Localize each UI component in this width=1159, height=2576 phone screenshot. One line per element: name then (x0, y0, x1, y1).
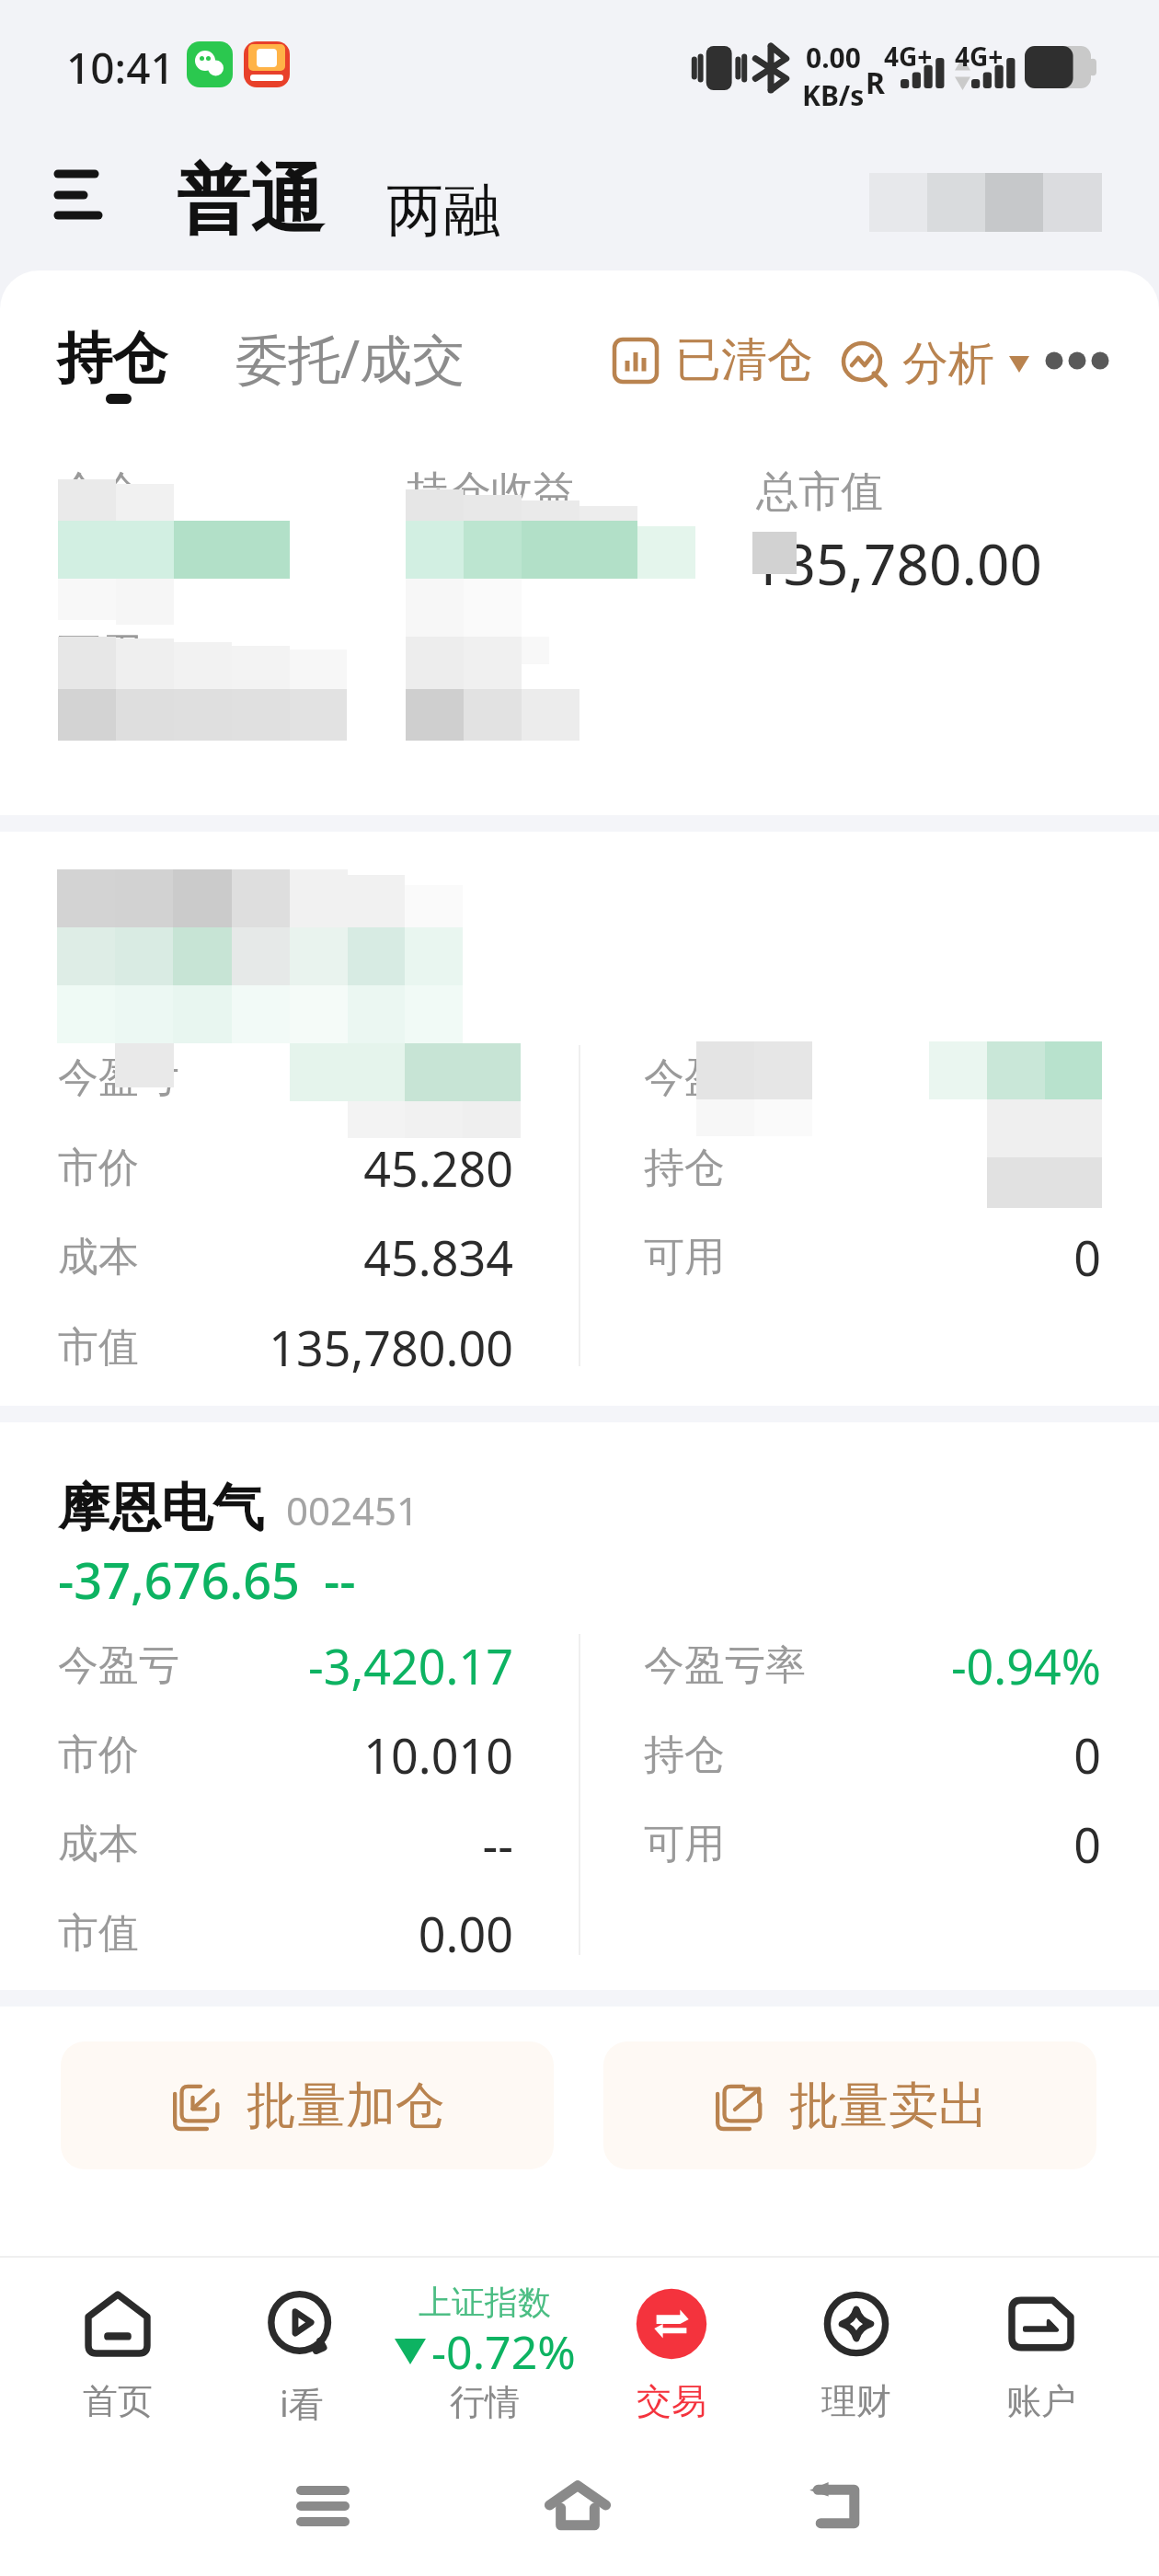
button[interactable]: 批量卖出 (603, 2041, 1096, 2169)
staticText: 持仓收益 (407, 466, 576, 519)
button[interactable]: Home (522, 2451, 633, 2561)
staticText: KB/s (802, 76, 865, 114)
button[interactable]: Holding row 1 (0, 832, 1159, 1406)
button[interactable]: i看 (210, 2258, 394, 2429)
staticText: 批量加仓 (247, 2075, 445, 2137)
staticText: 个仓 (58, 466, 143, 519)
button[interactable]: Account summary (0, 399, 1159, 815)
staticText: 0.00 (806, 39, 861, 76)
staticText: 10:41 (66, 39, 175, 97)
button[interactable]: 委托/成交 (235, 322, 465, 394)
staticText: 45.834 (0, 1225, 513, 1290)
staticText: -3,420.17 (0, 1633, 513, 1698)
staticText: 可用 (644, 1819, 725, 1869)
button[interactable]: 批量加仓 (61, 2041, 554, 2169)
staticText: 理财 (821, 2379, 891, 2423)
staticText: R (866, 63, 885, 103)
staticText: 4G+ (884, 39, 933, 74)
staticText: -- (0, 1811, 513, 1877)
staticText: 持仓 (644, 1730, 725, 1780)
button[interactable]: 普通 (177, 155, 324, 247)
staticText: 今盈亏 (58, 1640, 179, 1691)
staticText: 今盈亏率 (644, 1640, 806, 1691)
staticText: 普通 (177, 155, 324, 247)
staticText: 可取 (406, 627, 490, 681)
staticText: 批量卖出 (789, 2075, 988, 2137)
button[interactable]: Account (869, 173, 1102, 232)
button[interactable]: 持仓 (57, 324, 167, 404)
staticText: 市值 (58, 1322, 139, 1373)
staticText: 45.280 (0, 1135, 513, 1201)
button[interactable]: 已清仓 (613, 331, 813, 389)
button[interactable]: 交易 (579, 2258, 763, 2429)
staticText: i看 (280, 2379, 324, 2427)
staticText: 首页 (83, 2379, 153, 2423)
staticText: 持仓 (57, 324, 167, 394)
staticText: 成本 (58, 1819, 139, 1869)
staticText: 17 (432, 657, 494, 730)
button[interactable]: 首页 (26, 2258, 210, 2429)
staticText: 今盈亏率 (644, 1052, 806, 1103)
button[interactable]: Recents (268, 2451, 378, 2561)
staticText: 成本 (58, 1232, 139, 1282)
staticText: 0 (644, 1225, 1101, 1290)
staticText: 摩恩电气 (58, 1476, 264, 1541)
staticText: 135,780.00 (751, 524, 1042, 602)
button[interactable]: 账户 (948, 2258, 1133, 2429)
button[interactable]: Menu (40, 147, 117, 243)
staticText: -0.72% (431, 2320, 576, 2383)
staticText: 市价 (58, 1730, 139, 1780)
staticText: 0 (644, 1811, 1101, 1877)
staticText: 交易 (637, 2379, 706, 2423)
staticText: 持仓 (644, 1143, 725, 1193)
staticText: 分析 (902, 335, 994, 393)
staticText: 总市值 (756, 466, 883, 519)
staticText: 账户 (1006, 2379, 1076, 2423)
button[interactable]: Back (781, 2451, 891, 2561)
button[interactable]: 两融 (386, 175, 500, 247)
staticText: 4G+ (955, 39, 1004, 74)
staticText: 市值 (58, 1908, 139, 1959)
button[interactable]: 分析 (842, 335, 1029, 393)
staticText: 可用 (644, 1232, 725, 1282)
staticText: 135,780.00 (0, 1315, 513, 1380)
button[interactable]: Holding row 2 摩恩电气 (0, 1422, 1159, 1990)
staticText: 上证指数 (419, 2282, 551, 2323)
staticText: 0 (644, 1722, 1101, 1788)
staticText: 10.010 (0, 1722, 513, 1788)
button[interactable]: 理财 (763, 2258, 948, 2429)
button[interactable]: 上证指数 (365, 2258, 604, 2429)
staticText: 两融 (386, 175, 500, 247)
staticText: -- (324, 1546, 356, 1614)
staticText: 市价 (58, 1143, 139, 1193)
staticText: 0.00 (0, 1901, 513, 1966)
staticText: 可用 (58, 627, 143, 681)
button[interactable]: More options (1045, 339, 1109, 381)
staticText: -0.94% (644, 1633, 1101, 1698)
staticText: 今盈亏 (58, 1052, 179, 1103)
staticText: 已清仓 (675, 331, 813, 389)
staticText: 行情 (450, 2380, 520, 2424)
staticText: 委托/成交 (235, 322, 465, 394)
staticText: 002451 (286, 1484, 419, 1536)
staticText: -37,676.65 (58, 1546, 300, 1614)
